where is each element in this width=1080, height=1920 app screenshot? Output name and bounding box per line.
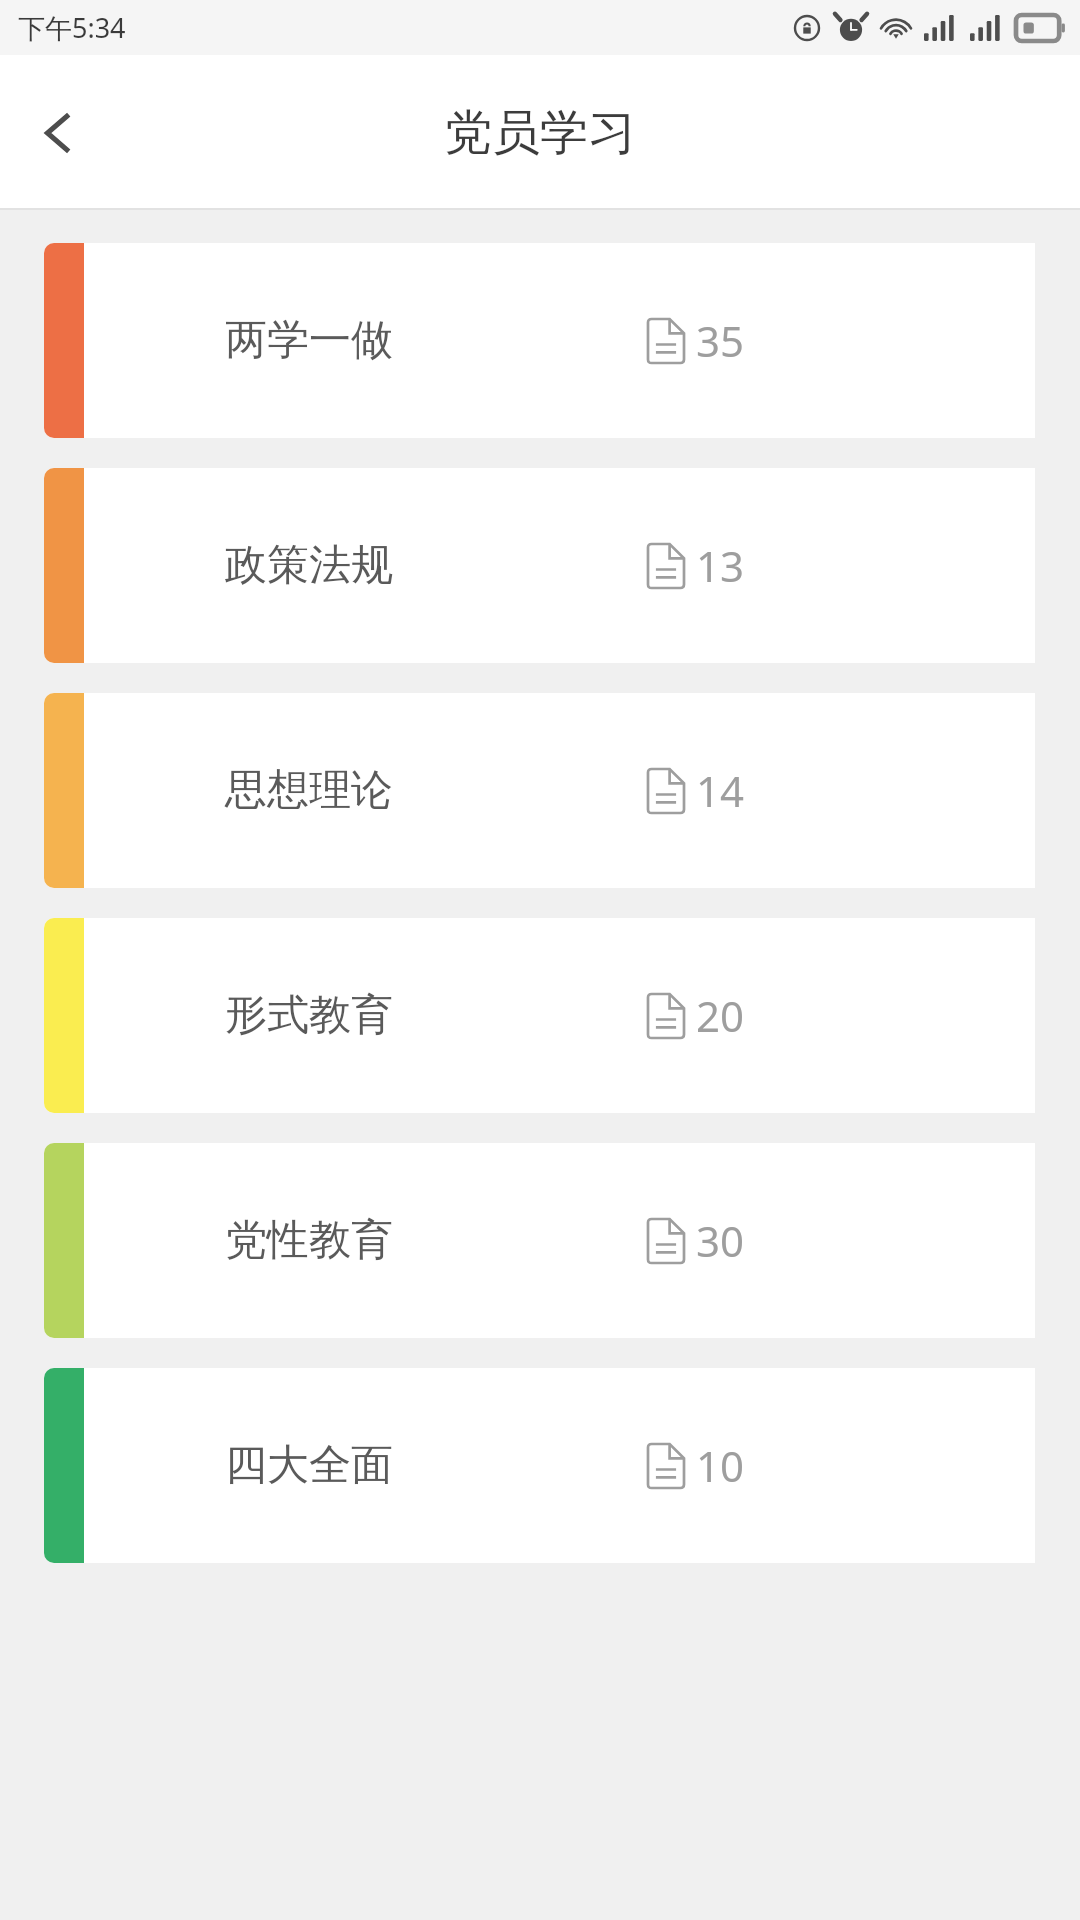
- staticText: 14: [696, 762, 745, 819]
- staticText: 党员学习: [444, 103, 636, 163]
- staticText: 下午5:34: [18, 9, 126, 46]
- staticText: 四大全面: [225, 1439, 393, 1492]
- button[interactable]: 四大全面: [44, 1368, 1035, 1563]
- button[interactable]: 两学一做: [44, 243, 1035, 438]
- staticText: 思想理论: [225, 764, 393, 817]
- staticText: 政策法规: [225, 539, 393, 592]
- button[interactable]: 政策法规: [44, 468, 1035, 663]
- button[interactable]: 思想理论: [44, 693, 1035, 888]
- button[interactable]: 党性教育: [44, 1143, 1035, 1338]
- staticText: 形式教育: [225, 989, 393, 1042]
- staticText: 10: [696, 1437, 745, 1494]
- staticText: 20: [696, 987, 745, 1044]
- staticText: 13: [696, 537, 745, 594]
- staticText: 党性教育: [225, 1214, 393, 1267]
- button[interactable]: 形式教育: [44, 918, 1035, 1113]
- staticText: 35: [696, 312, 745, 369]
- button[interactable]: Back: [20, 95, 96, 171]
- staticText: 30: [696, 1212, 745, 1269]
- staticText: 两学一做: [225, 314, 393, 367]
